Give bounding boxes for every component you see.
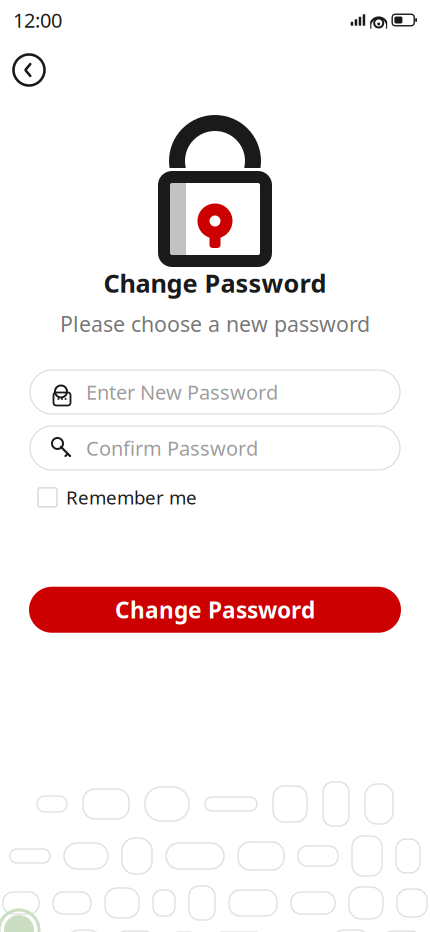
staticText: 12:00 xyxy=(13,7,62,33)
staticText: Confirm Password xyxy=(86,435,258,461)
button[interactable]: Remember me xyxy=(38,481,197,514)
staticText: Remember me xyxy=(66,485,197,510)
button[interactable]: Back xyxy=(7,48,51,92)
staticText: Please choose a new password xyxy=(60,310,370,338)
button[interactable]: Change Password xyxy=(29,587,401,633)
button[interactable]: Confirm Password xyxy=(30,426,400,470)
staticText: Change Password xyxy=(115,595,315,625)
staticText: Change Password xyxy=(103,266,326,300)
staticText: Enter New Password xyxy=(86,379,278,405)
button[interactable]: Enter New Password xyxy=(30,370,400,414)
